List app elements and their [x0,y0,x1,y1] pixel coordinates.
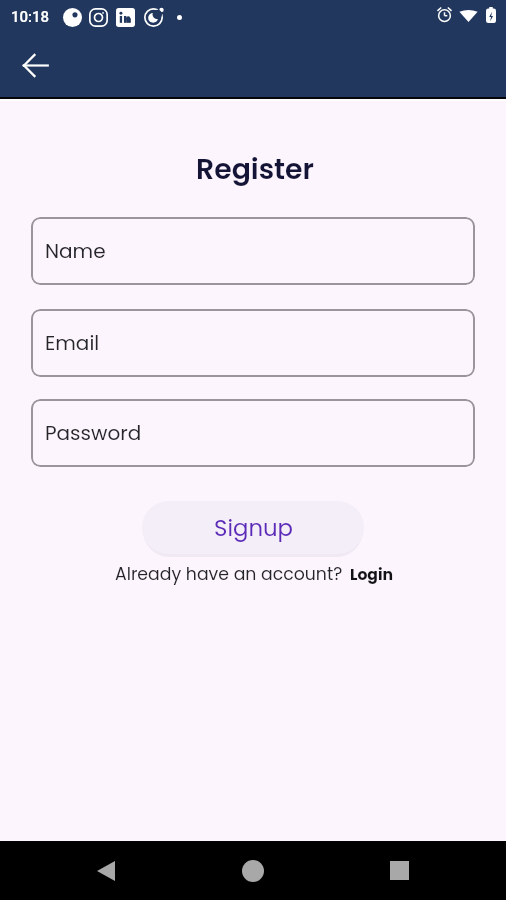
staticText: 10:18 [11,8,50,26]
staticText: Already have an account? [115,562,347,586]
staticText: Register [2,149,506,189]
button[interactable]: Name [31,217,475,285]
button[interactable]: Signup [142,501,364,554]
button[interactable]: Password [31,399,475,467]
button[interactable]: Login [350,564,394,586]
staticText: Password [45,419,142,447]
button[interactable]: Email [31,309,475,377]
button[interactable]: Recent apps [367,841,431,900]
staticText: Email [45,329,100,357]
staticText: Signup [214,512,293,544]
button[interactable]: Back [74,841,138,900]
button[interactable]: Back [11,41,59,89]
staticText: Name [45,237,106,265]
button[interactable]: Home [221,841,285,900]
